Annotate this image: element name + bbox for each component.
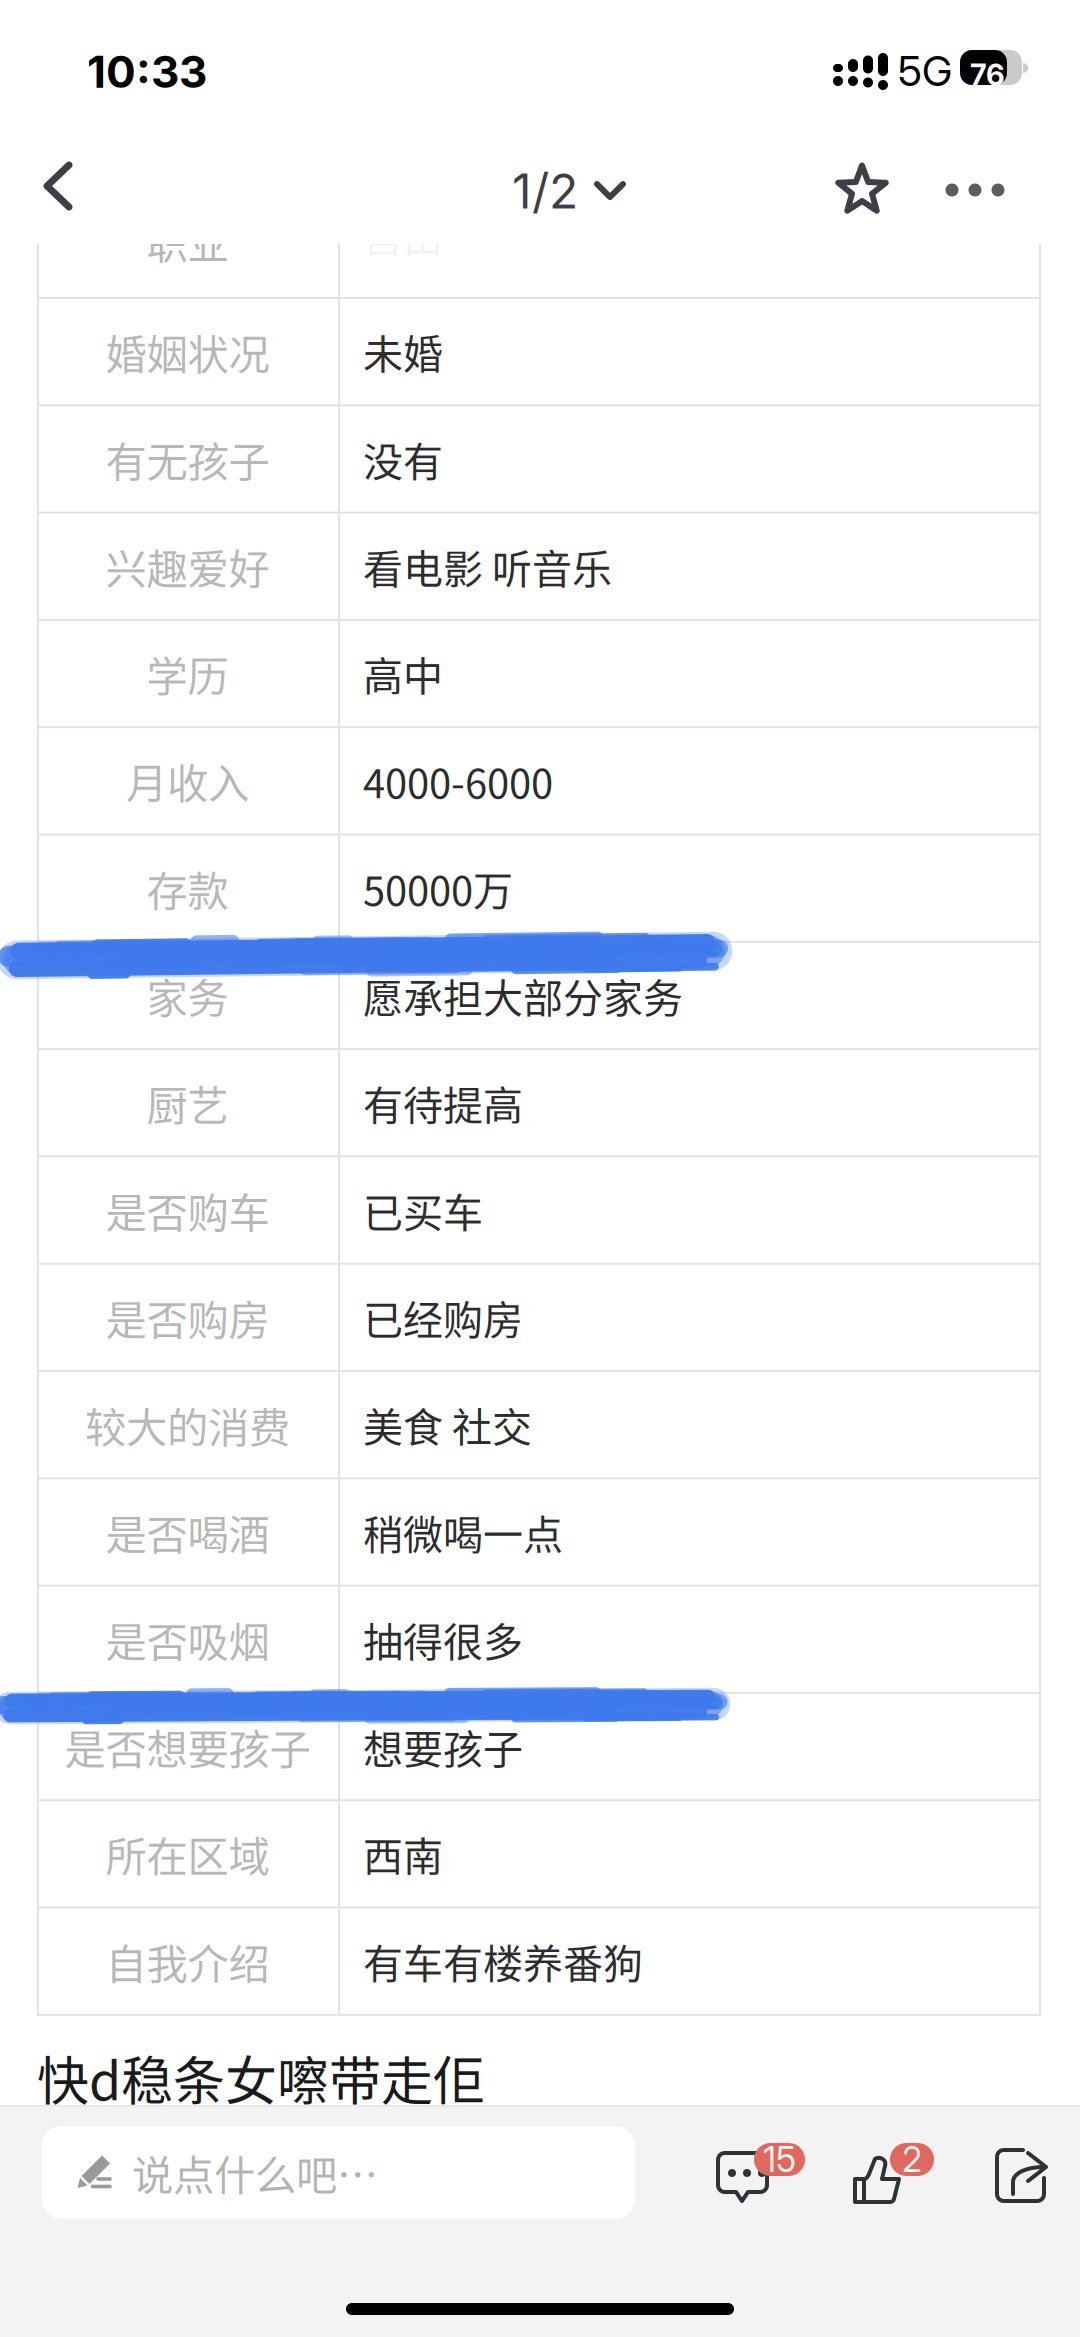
staticText: 学历 bbox=[146, 644, 228, 703]
staticText: 厨艺 bbox=[146, 1073, 228, 1133]
staticText: 兴趣爱好 bbox=[105, 536, 269, 596]
staticText: 是否想要孩子 bbox=[64, 1717, 310, 1776]
staticText: 已经购房 bbox=[363, 1288, 523, 1346]
staticText: 月收入 bbox=[126, 751, 249, 811]
staticText: 抽得很多 bbox=[363, 1610, 523, 1668]
staticText: 有车有楼养番狗 bbox=[363, 1932, 643, 1990]
staticText: 是否购房 bbox=[105, 1287, 269, 1347]
button[interactable]: 说点什么吧… bbox=[42, 2126, 635, 2219]
button[interactable]: More bbox=[920, 138, 1030, 242]
staticText: 已买车 bbox=[363, 1181, 483, 1239]
staticText: 家务 bbox=[146, 965, 228, 1025]
staticText: 说点什么吧… bbox=[132, 2143, 378, 2202]
staticText: 没有 bbox=[363, 430, 443, 488]
staticText: 想要孩子 bbox=[363, 1718, 523, 1775]
button[interactable]: Favorite bbox=[810, 138, 914, 243]
staticText: 4000-6000 bbox=[363, 752, 553, 810]
staticText: 有待提高 bbox=[363, 1074, 523, 1132]
staticText: 存款 bbox=[146, 858, 228, 918]
staticText: 是否吸烟 bbox=[105, 1609, 269, 1669]
staticText: 15 bbox=[763, 2138, 796, 2180]
staticText: 2 bbox=[902, 2138, 922, 2180]
staticText: 自我介绍 bbox=[105, 1931, 269, 1991]
staticText: 未婚 bbox=[363, 323, 443, 381]
staticText: 10:33 bbox=[87, 45, 207, 98]
staticText: 美食 社交 bbox=[363, 1396, 532, 1454]
staticText: 西南 bbox=[363, 1825, 443, 1883]
staticText: 50000万 bbox=[363, 859, 513, 917]
staticText: 职业 bbox=[146, 211, 228, 271]
staticText: 1/2 bbox=[512, 162, 578, 220]
staticText: 76 bbox=[970, 57, 1005, 92]
staticText: 有无孩子 bbox=[105, 429, 269, 489]
staticText: 愿承担大部分家务 bbox=[363, 966, 683, 1024]
staticText: 快d稳条女嚓带走佢 bbox=[37, 2040, 485, 2115]
staticText: 5G bbox=[898, 46, 952, 96]
staticText: 是否购车 bbox=[105, 1180, 269, 1240]
button[interactable]: 1/2 bbox=[490, 138, 648, 244]
staticText: 所在区域 bbox=[105, 1824, 269, 1884]
button[interactable]: Back bbox=[11, 136, 105, 236]
staticText: 高中 bbox=[363, 645, 443, 702]
staticText: 婚姻状况 bbox=[105, 322, 269, 382]
staticText: 稍微喝一点 bbox=[363, 1503, 563, 1561]
button[interactable]: Share bbox=[995, 2148, 1048, 2203]
staticText: 自由 bbox=[363, 206, 443, 264]
staticText: 较大的消费 bbox=[85, 1395, 290, 1455]
staticText: 看电影 听音乐 bbox=[363, 537, 612, 595]
button[interactable]: Comments bbox=[716, 2143, 824, 2217]
staticText: 是否喝酒 bbox=[105, 1502, 269, 1562]
button[interactable]: Like bbox=[853, 2143, 953, 2217]
